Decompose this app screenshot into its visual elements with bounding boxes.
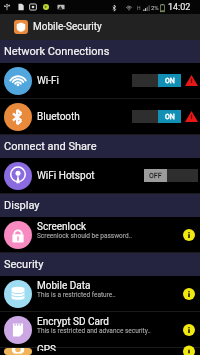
staticText: Encrypt SD Card <box>37 316 109 328</box>
other: Info <box>183 229 195 241</box>
button[interactable]: Mobile-Security <box>0 14 200 40</box>
button[interactable]: Toggle on <box>132 110 181 123</box>
button[interactable]: Wi-Fi <box>0 63 200 98</box>
staticText: Display <box>4 199 40 212</box>
other: Warning <box>185 75 198 86</box>
staticText: This is a restricted feature.. <box>37 291 116 299</box>
other: Info <box>183 324 195 336</box>
staticText: Screenlock <box>37 221 87 233</box>
staticText: Connect and Share <box>4 140 97 153</box>
staticText: Screenlock should be password.. <box>37 232 132 240</box>
staticText: 14:02 <box>168 2 191 13</box>
staticText: Network Connections <box>4 45 110 58</box>
other: Info <box>183 348 195 355</box>
button[interactable]: GPS <box>0 348 200 355</box>
staticText: WiFi Hotspot <box>37 170 95 182</box>
button[interactable]: Encrypt SD Card <box>0 312 200 347</box>
staticText: OFF <box>149 172 162 180</box>
staticText: Mobile Data <box>37 280 91 292</box>
button[interactable]: Toggle on <box>132 74 181 87</box>
staticText: Bluetooth <box>37 111 80 123</box>
staticText: ON <box>165 113 175 121</box>
other: Warning <box>185 111 198 122</box>
button[interactable]: Toggle off <box>144 169 198 182</box>
staticText: This is restricted and advance security.… <box>37 327 151 335</box>
other: Info <box>183 288 195 300</box>
staticText: ON <box>165 77 175 85</box>
staticText: H <box>137 5 141 11</box>
button[interactable]: Bluetooth <box>0 99 200 134</box>
button[interactable]: Screenlock <box>0 217 200 252</box>
staticText: 2% <box>151 4 159 11</box>
staticText: Wi-Fi <box>37 75 60 87</box>
button[interactable]: WiFi Hotspot <box>0 158 200 193</box>
staticText: GPS <box>37 344 57 351</box>
button[interactable]: Mobile Data <box>0 276 200 311</box>
staticText: Security <box>4 258 44 271</box>
staticText: Mobile-Security <box>33 21 102 33</box>
